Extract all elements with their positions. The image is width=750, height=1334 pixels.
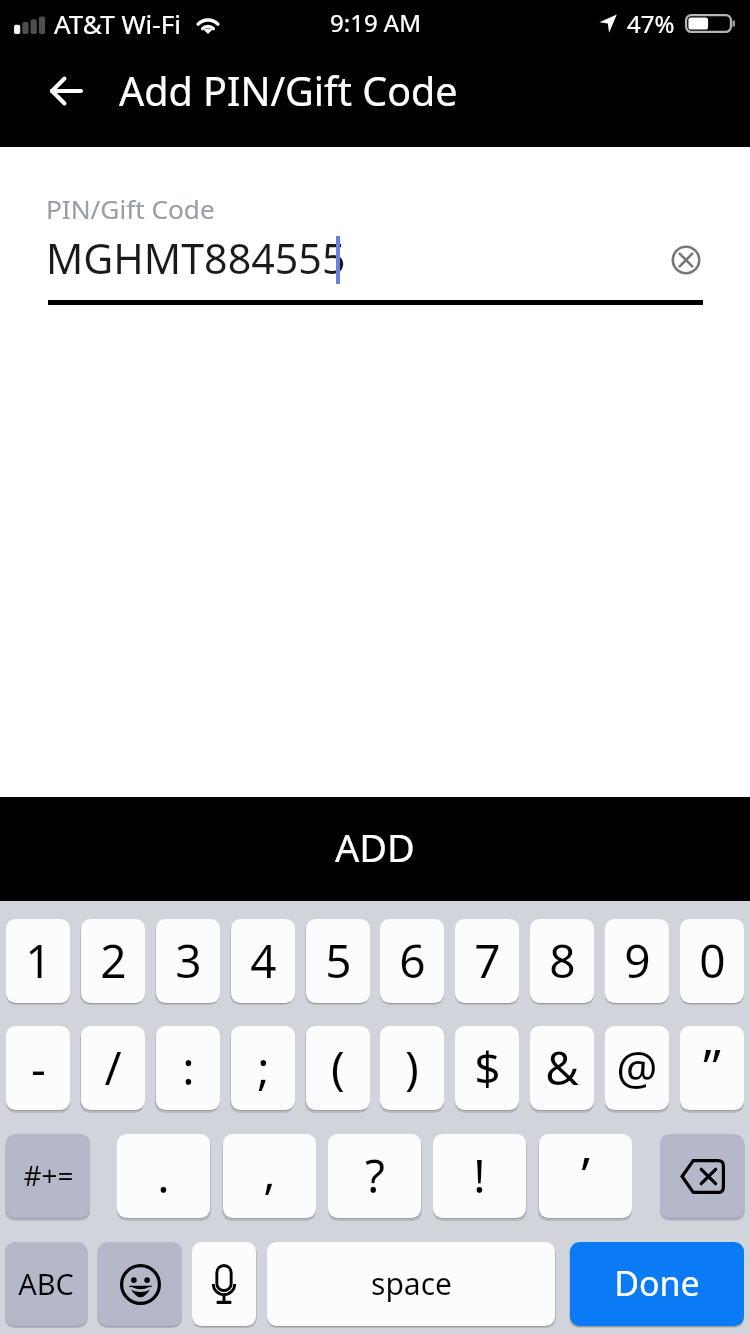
button[interactable]: 0 [680, 919, 744, 1003]
staticText: ! [473, 1144, 486, 1207]
staticText: ” [703, 1032, 721, 1100]
button[interactable]: ABC [5, 1242, 87, 1326]
button[interactable]: #+= [6, 1134, 90, 1218]
staticText: ) [405, 1036, 419, 1099]
button[interactable]: ) [380, 1026, 444, 1110]
button[interactable]: 7 [455, 919, 519, 1003]
staticText: : [182, 1036, 195, 1099]
staticText: 5 [325, 929, 352, 992]
staticText: ABC [18, 1264, 74, 1303]
button[interactable]: 6 [380, 919, 444, 1003]
staticText: 0 [699, 929, 726, 992]
button[interactable]: & [530, 1026, 594, 1110]
staticText: ADD [335, 821, 415, 873]
staticText: 7 [474, 929, 501, 992]
staticText: @ [616, 1036, 658, 1099]
staticText: , [263, 1140, 276, 1203]
staticText: 3 [175, 929, 202, 992]
button[interactable]: Done [570, 1242, 744, 1326]
button[interactable]: : [156, 1026, 220, 1110]
staticText: #+= [23, 1156, 74, 1194]
staticText: PIN/Gift Code [46, 191, 215, 227]
button[interactable]: $ [455, 1026, 519, 1110]
button[interactable]: 8 [530, 919, 594, 1003]
staticText: ’ [581, 1140, 590, 1208]
staticText: MGHMT884555 [46, 230, 346, 286]
button[interactable]: 3 [156, 919, 220, 1003]
staticText: space [371, 1263, 452, 1304]
staticText: Add PIN/Gift Code [119, 64, 458, 118]
button[interactable]: Voice input [192, 1242, 256, 1326]
staticText: 8 [549, 929, 576, 992]
button[interactable]: Clear [660, 234, 712, 286]
button[interactable]: ! [433, 1134, 526, 1218]
button[interactable]: / [81, 1026, 145, 1110]
staticText: AT&T Wi-Fi [54, 6, 181, 41]
button[interactable]: 5 [306, 919, 370, 1003]
staticText: ? [365, 1144, 385, 1207]
staticText: 6 [399, 929, 426, 992]
button[interactable]: ? [328, 1134, 421, 1218]
button[interactable]: . [117, 1134, 210, 1218]
button[interactable]: Back [38, 63, 94, 119]
button[interactable]: ; [231, 1026, 295, 1110]
staticText: Done [614, 1260, 700, 1306]
button[interactable]: 9 [605, 919, 669, 1003]
staticText: . [157, 1144, 170, 1207]
button[interactable]: ” [680, 1026, 744, 1110]
staticText: / [104, 1036, 122, 1099]
staticText: $ [474, 1036, 501, 1099]
button[interactable]: ’ [539, 1134, 632, 1218]
button[interactable]: - [6, 1026, 70, 1110]
staticText: 4 [250, 929, 277, 992]
staticText: ; [257, 1036, 270, 1099]
staticText: 9 [624, 929, 651, 992]
button[interactable]: 1 [6, 919, 70, 1003]
button[interactable]: 4 [231, 919, 295, 1003]
staticText: - [31, 1036, 46, 1099]
staticText: ( [331, 1036, 345, 1099]
button[interactable]: 2 [81, 919, 145, 1003]
button[interactable]: ( [306, 1026, 370, 1110]
staticText: 47% [627, 7, 675, 40]
button[interactable]: Emoji [98, 1242, 182, 1326]
button[interactable]: Backspace [660, 1134, 744, 1218]
button[interactable]: @ [605, 1026, 669, 1110]
staticText: 2 [100, 929, 127, 992]
button[interactable]: ADD [0, 797, 750, 901]
staticText: 1 [25, 929, 52, 992]
button[interactable]: space [267, 1242, 555, 1326]
button[interactable]: , [223, 1134, 316, 1218]
staticText: & [545, 1036, 579, 1099]
staticText: 9:19 AM [330, 6, 421, 39]
